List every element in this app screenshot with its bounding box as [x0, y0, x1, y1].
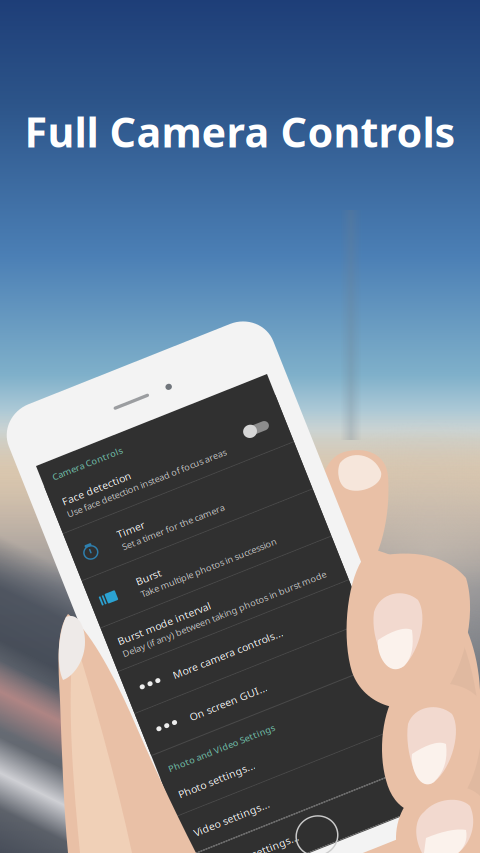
button[interactable]: More camera controls... [15, 717, 264, 765]
staticText: Camera Controls [26, 492, 102, 505]
staticText: Take multiple photos in succession [65, 643, 211, 655]
button[interactable]: Burst [15, 613, 264, 667]
staticText: Use face detection instead of focus area… [26, 535, 197, 547]
button[interactable]: Photo settings... [15, 839, 264, 853]
staticText: Face detection [26, 520, 100, 534]
button[interactable]: Face detection [15, 505, 264, 559]
button[interactable]: Timer [15, 559, 264, 613]
staticText: On screen GUI... [65, 783, 148, 797]
button[interactable]: On screen GUI... [15, 765, 264, 813]
staticText: Full Camera Controls [24, 104, 455, 159]
staticText: Set a timer for the camera [65, 589, 175, 601]
button[interactable]: Burst mode interval [15, 667, 264, 717]
staticText: Delay (if any) between taking photos in … [26, 695, 245, 707]
staticText: More camera controls... [65, 735, 183, 749]
staticText: Burst mode interval [26, 680, 126, 694]
staticText: Timer [65, 574, 94, 588]
staticText: Burst [65, 628, 92, 642]
staticText: Photo and Video Settings [26, 826, 141, 839]
